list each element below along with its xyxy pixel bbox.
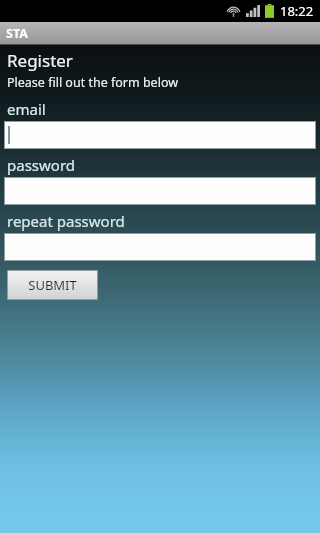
button[interactable] [4, 121, 316, 149]
staticText: email [7, 99, 46, 119]
button[interactable] [4, 177, 316, 205]
staticText: STA [6, 25, 28, 42]
staticText: Register [7, 49, 73, 72]
button[interactable]: Submit registration form [7, 270, 98, 300]
button[interactable] [4, 233, 316, 261]
staticText: password [7, 155, 75, 175]
staticText: repeat password [7, 211, 125, 231]
staticText: 18:22 [280, 2, 314, 20]
staticText: SUBMIT [28, 276, 77, 294]
staticText: Please fill out the form below [7, 74, 179, 91]
